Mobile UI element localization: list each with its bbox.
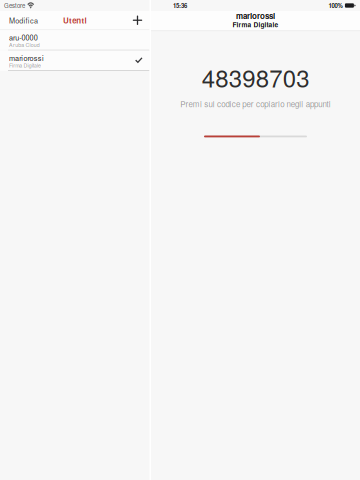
staticText: 15:36 (173, 1, 187, 10)
staticText: aru-0000 (9, 32, 38, 43)
button[interactable]: mariorossi (0, 50, 149, 70)
button[interactable]: 48398703 (151, 66, 360, 88)
staticText: Utenti (63, 14, 86, 26)
staticText: mariorossi (236, 10, 275, 21)
staticText: Aruba Cloud (9, 41, 40, 48)
button[interactable]: Modifica (0, 11, 45, 29)
staticText: Gestore (4, 1, 25, 10)
button[interactable]: Aggiungi utente (126, 11, 149, 29)
staticText: Firma Digitale (232, 20, 278, 29)
staticText: 100% (328, 1, 342, 10)
button[interactable]: aru-0000 (0, 30, 149, 50)
staticText: 48398703 (202, 60, 309, 94)
staticText: Premi sul codice per copiarlo negli appu… (180, 98, 331, 110)
staticText: Firma Digitale (9, 61, 41, 69)
staticText: mariorossi (9, 53, 44, 63)
staticText: Modifica (9, 15, 38, 25)
